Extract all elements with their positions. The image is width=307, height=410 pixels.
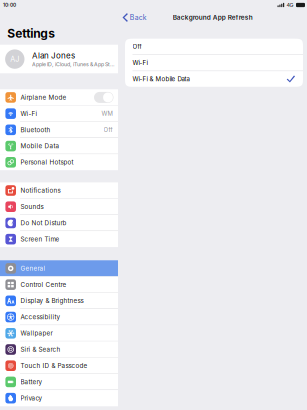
staticText: Screen Time	[21, 235, 60, 243]
staticText: WM	[101, 110, 112, 117]
staticText: Battery	[21, 378, 43, 386]
button[interactable]: Touch ID & Passcode	[0, 358, 118, 374]
button[interactable]: Mobile Data	[0, 138, 118, 154]
staticText: Accessibility	[21, 313, 61, 321]
button[interactable]: Wallpaper	[0, 325, 118, 341]
staticText: Off	[103, 126, 112, 133]
button[interactable]: Back	[118, 9, 147, 25]
staticText: AJ	[10, 55, 19, 63]
staticText: Settings	[7, 26, 55, 41]
button[interactable]: Do Not Disturb	[0, 215, 118, 231]
staticText: Wi-Fi	[132, 59, 147, 66]
staticText: 10:00	[3, 2, 16, 8]
staticText: 4G	[287, 2, 294, 8]
staticText: Mobile Data	[21, 142, 60, 150]
staticText: Background App Refresh	[173, 14, 253, 21]
button[interactable]: Siri & Search	[0, 341, 118, 358]
button[interactable]: General	[0, 260, 118, 276]
staticText: Do Not Disturb	[21, 219, 67, 227]
button[interactable]: Personal Hotspot	[0, 154, 118, 170]
button[interactable]: Accessibility	[0, 309, 118, 325]
button[interactable]: Privacy	[0, 390, 118, 406]
button[interactable]: Airplane Mode	[0, 89, 118, 105]
button[interactable]: Display & Brightness	[0, 293, 118, 309]
staticText: Wi-Fi	[21, 110, 38, 117]
button[interactable]: Bluetooth	[0, 122, 118, 138]
staticText: Touch ID & Passcode	[21, 362, 88, 369]
staticText: Privacy	[21, 394, 43, 402]
button[interactable]: Screen Time	[0, 231, 118, 247]
button[interactable]: Sounds	[0, 199, 118, 215]
staticText: Alan Jones	[32, 51, 75, 60]
button[interactable]: Wi-Fi	[0, 105, 118, 122]
button[interactable]: Wi-Fi	[125, 55, 303, 71]
staticText: Display & Brightness	[21, 297, 84, 305]
staticText: Sounds	[21, 203, 44, 210]
staticText: Personal Hotspot	[21, 158, 74, 166]
staticText: Siri & Search	[21, 346, 61, 353]
button[interactable]: AJ	[0, 45, 118, 73]
button[interactable]: Off	[125, 39, 303, 54]
button[interactable]: Notifications	[0, 182, 118, 199]
button[interactable]: Control Centre	[0, 276, 118, 293]
staticText: Wallpaper	[21, 329, 53, 337]
staticText: General	[21, 265, 46, 272]
staticText: Notifications	[21, 187, 61, 194]
button[interactable]: Battery	[0, 374, 118, 390]
staticText: Airplane Mode	[21, 94, 67, 101]
staticText: Back	[130, 13, 147, 22]
staticText: Off	[132, 43, 141, 50]
staticText: Apple ID, iCloud, iTunes & App St…	[32, 61, 115, 67]
button[interactable]: Wi-Fi & Mobile Data	[125, 71, 303, 87]
staticText: Control Centre	[21, 281, 67, 288]
staticText: Bluetooth	[21, 126, 51, 134]
staticText: Wi-Fi & Mobile Data	[132, 75, 189, 83]
